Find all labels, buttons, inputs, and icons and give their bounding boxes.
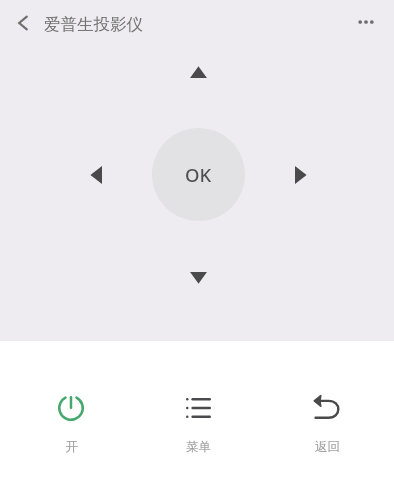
button[interactable]: OK xyxy=(152,128,245,221)
button[interactable]: 返回 xyxy=(277,392,377,455)
button[interactable]: Left xyxy=(80,159,112,191)
staticText: 爱普生投影仪 xyxy=(44,14,143,35)
staticText: 开 xyxy=(65,439,78,455)
button[interactable]: More options xyxy=(344,0,388,44)
staticText: OK xyxy=(185,162,212,187)
staticText: 返回 xyxy=(315,439,340,455)
staticText: 菜单 xyxy=(186,439,211,455)
button[interactable]: Up xyxy=(182,56,214,88)
button[interactable]: Right xyxy=(284,159,316,191)
button[interactable]: Back xyxy=(1,1,45,45)
button[interactable]: 开 xyxy=(21,392,121,455)
button[interactable]: 菜单 xyxy=(148,392,248,455)
button[interactable]: Down xyxy=(182,261,214,293)
